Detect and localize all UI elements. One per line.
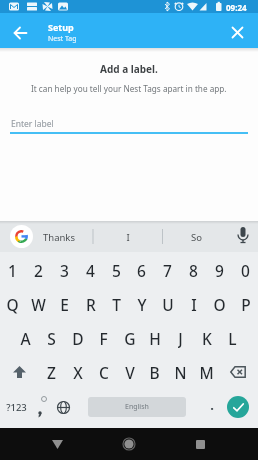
staticText: Nest Tag (48, 34, 77, 44)
button[interactable]: 7 (155, 260, 180, 280)
staticText: T (112, 294, 121, 314)
staticText: . (210, 396, 214, 414)
button[interactable]: J (168, 328, 193, 348)
staticText: 4 (86, 260, 95, 280)
staticText: English (125, 402, 149, 412)
staticText: Thanks (43, 231, 75, 244)
button[interactable]: 5 (104, 260, 129, 280)
button[interactable]: 8 (181, 260, 206, 280)
button[interactable]: W (26, 294, 51, 314)
button[interactable]: H (142, 328, 167, 348)
button[interactable]: C (91, 362, 116, 382)
staticText: A (20, 328, 31, 348)
button[interactable] (10, 225, 33, 248)
staticText: 2 (34, 260, 43, 280)
button[interactable]: G (117, 328, 142, 348)
button[interactable]: X (65, 362, 90, 382)
staticText: D (72, 328, 84, 348)
staticText: 09:24 (226, 2, 247, 13)
button[interactable]: L (220, 328, 245, 348)
staticText: Enter label (11, 118, 54, 130)
staticText: 7 (163, 260, 172, 280)
button[interactable]: English (88, 397, 186, 417)
button[interactable]: I (103, 227, 153, 247)
button[interactable]: 3 (52, 260, 77, 280)
button[interactable]: A (13, 328, 38, 348)
staticText: Q (6, 294, 19, 314)
button[interactable]: . (203, 395, 221, 415)
button[interactable]: V (117, 362, 142, 382)
button[interactable]: S (39, 328, 64, 348)
staticText: It can help you tell your Nest Tags apar… (31, 83, 227, 94)
staticText: R (86, 294, 96, 314)
button[interactable] (115, 430, 143, 458)
button[interactable]: So (171, 227, 221, 247)
staticText: Y (137, 294, 147, 314)
button[interactable]: E (52, 294, 77, 314)
staticText: C (99, 362, 109, 382)
staticText: 5 (112, 260, 121, 280)
button[interactable]: Q (0, 294, 25, 314)
button[interactable] (225, 20, 250, 45)
staticText: B (149, 362, 160, 382)
button[interactable]: D (65, 328, 90, 348)
button[interactable]: 4 (78, 260, 103, 280)
staticText: 8 (189, 260, 198, 280)
staticText: 9 (215, 260, 224, 280)
staticText: E (60, 294, 69, 314)
staticText: G (124, 328, 136, 348)
staticText: K (202, 328, 212, 348)
staticText: So (191, 231, 202, 244)
button[interactable]: K (194, 328, 219, 348)
button[interactable]: U (155, 294, 180, 314)
button[interactable]: R (78, 294, 103, 314)
staticText: M (199, 362, 214, 382)
button[interactable]: 9 (207, 260, 232, 280)
staticText: U (162, 294, 174, 314)
staticText: Add a label. (100, 62, 158, 76)
staticText: I (191, 294, 197, 314)
staticText: W (31, 294, 46, 314)
button[interactable]: F (91, 328, 116, 348)
button[interactable]: B (142, 362, 167, 382)
button[interactable]: O (207, 294, 232, 314)
button[interactable]: T (104, 294, 129, 314)
button[interactable] (51, 394, 76, 420)
button[interactable]: M (194, 362, 219, 382)
staticText: ?123 (6, 401, 27, 414)
staticText: 3 (60, 260, 69, 280)
button[interactable] (43, 430, 71, 458)
button[interactable] (186, 430, 214, 458)
staticText: O (213, 294, 226, 314)
button[interactable]: ?123 (0, 397, 33, 417)
staticText: I (126, 231, 130, 244)
staticText: P (241, 294, 251, 314)
staticText: F (99, 328, 108, 348)
button[interactable]: Z (39, 362, 64, 382)
button[interactable]: P (233, 294, 258, 314)
button[interactable] (227, 396, 249, 418)
button[interactable]: Y (129, 294, 154, 314)
staticText: V (125, 362, 135, 382)
staticText: H (149, 328, 161, 348)
button[interactable]: 1 (0, 260, 25, 280)
button[interactable] (6, 359, 33, 385)
button[interactable]: Thanks (29, 227, 89, 247)
staticText: X (73, 362, 83, 382)
staticText: 1 (8, 260, 17, 280)
staticText: Z (47, 362, 56, 382)
button[interactable] (8, 20, 33, 45)
button[interactable]: 6 (129, 260, 154, 280)
staticText: 6 (137, 260, 146, 280)
button[interactable] (224, 359, 252, 385)
staticText: J (178, 328, 183, 348)
button[interactable]: 0 (233, 260, 258, 280)
staticText: L (228, 328, 237, 348)
staticText: N (174, 362, 187, 382)
button[interactable]: I (181, 294, 206, 314)
button[interactable] (30, 394, 52, 420)
staticText: Setup (48, 21, 74, 33)
staticText: 0 (241, 260, 250, 280)
button[interactable]: 2 (26, 260, 51, 280)
button[interactable]: N (168, 362, 193, 382)
